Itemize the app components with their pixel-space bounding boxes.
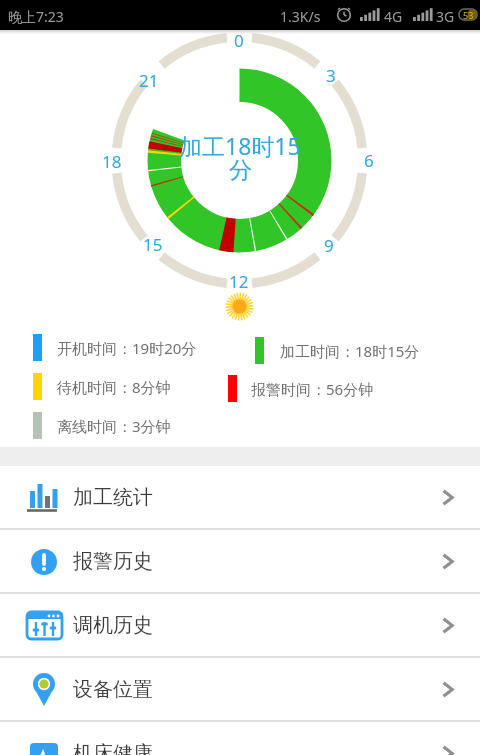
button[interactable]: 设备位置 (0, 658, 480, 720)
button[interactable]: 加工统计 (0, 466, 480, 528)
staticText: 开机时间：19时20分 (57, 338, 197, 358)
staticText: 加工时间：18时15分 (280, 341, 420, 361)
button[interactable]: 机床健康 (0, 722, 480, 755)
staticText: 3 (326, 64, 336, 86)
staticText: 21 (139, 69, 159, 91)
staticText: 加工统计 (73, 485, 153, 510)
staticText: 机床健康 (73, 741, 153, 755)
staticText: 离线时间：3分钟 (57, 416, 171, 436)
staticText: 12 (229, 270, 249, 292)
staticText: 加工18时15 (179, 130, 301, 158)
button[interactable]: 报警历史 (0, 530, 480, 592)
staticText: 分 (229, 156, 252, 184)
staticText: 53 (463, 9, 474, 21)
staticText: 15 (143, 233, 163, 255)
staticText: 18 (102, 150, 122, 172)
staticText: 设备位置 (73, 677, 153, 702)
staticText: 报警历史 (73, 549, 153, 574)
staticText: 调机历史 (73, 613, 153, 638)
staticText: 1.3K/s (280, 7, 321, 26)
staticText: 6 (364, 149, 374, 171)
staticText: 3G (436, 7, 455, 26)
staticText: 晚上7:23 (8, 7, 64, 26)
staticText: 0 (234, 29, 244, 51)
staticText: 4G (384, 7, 403, 26)
button[interactable]: 调机历史 (0, 594, 480, 656)
staticText: 9 (324, 234, 334, 256)
staticText: 待机时间：8分钟 (57, 377, 171, 397)
staticText: 报警时间：56分钟 (251, 379, 374, 399)
